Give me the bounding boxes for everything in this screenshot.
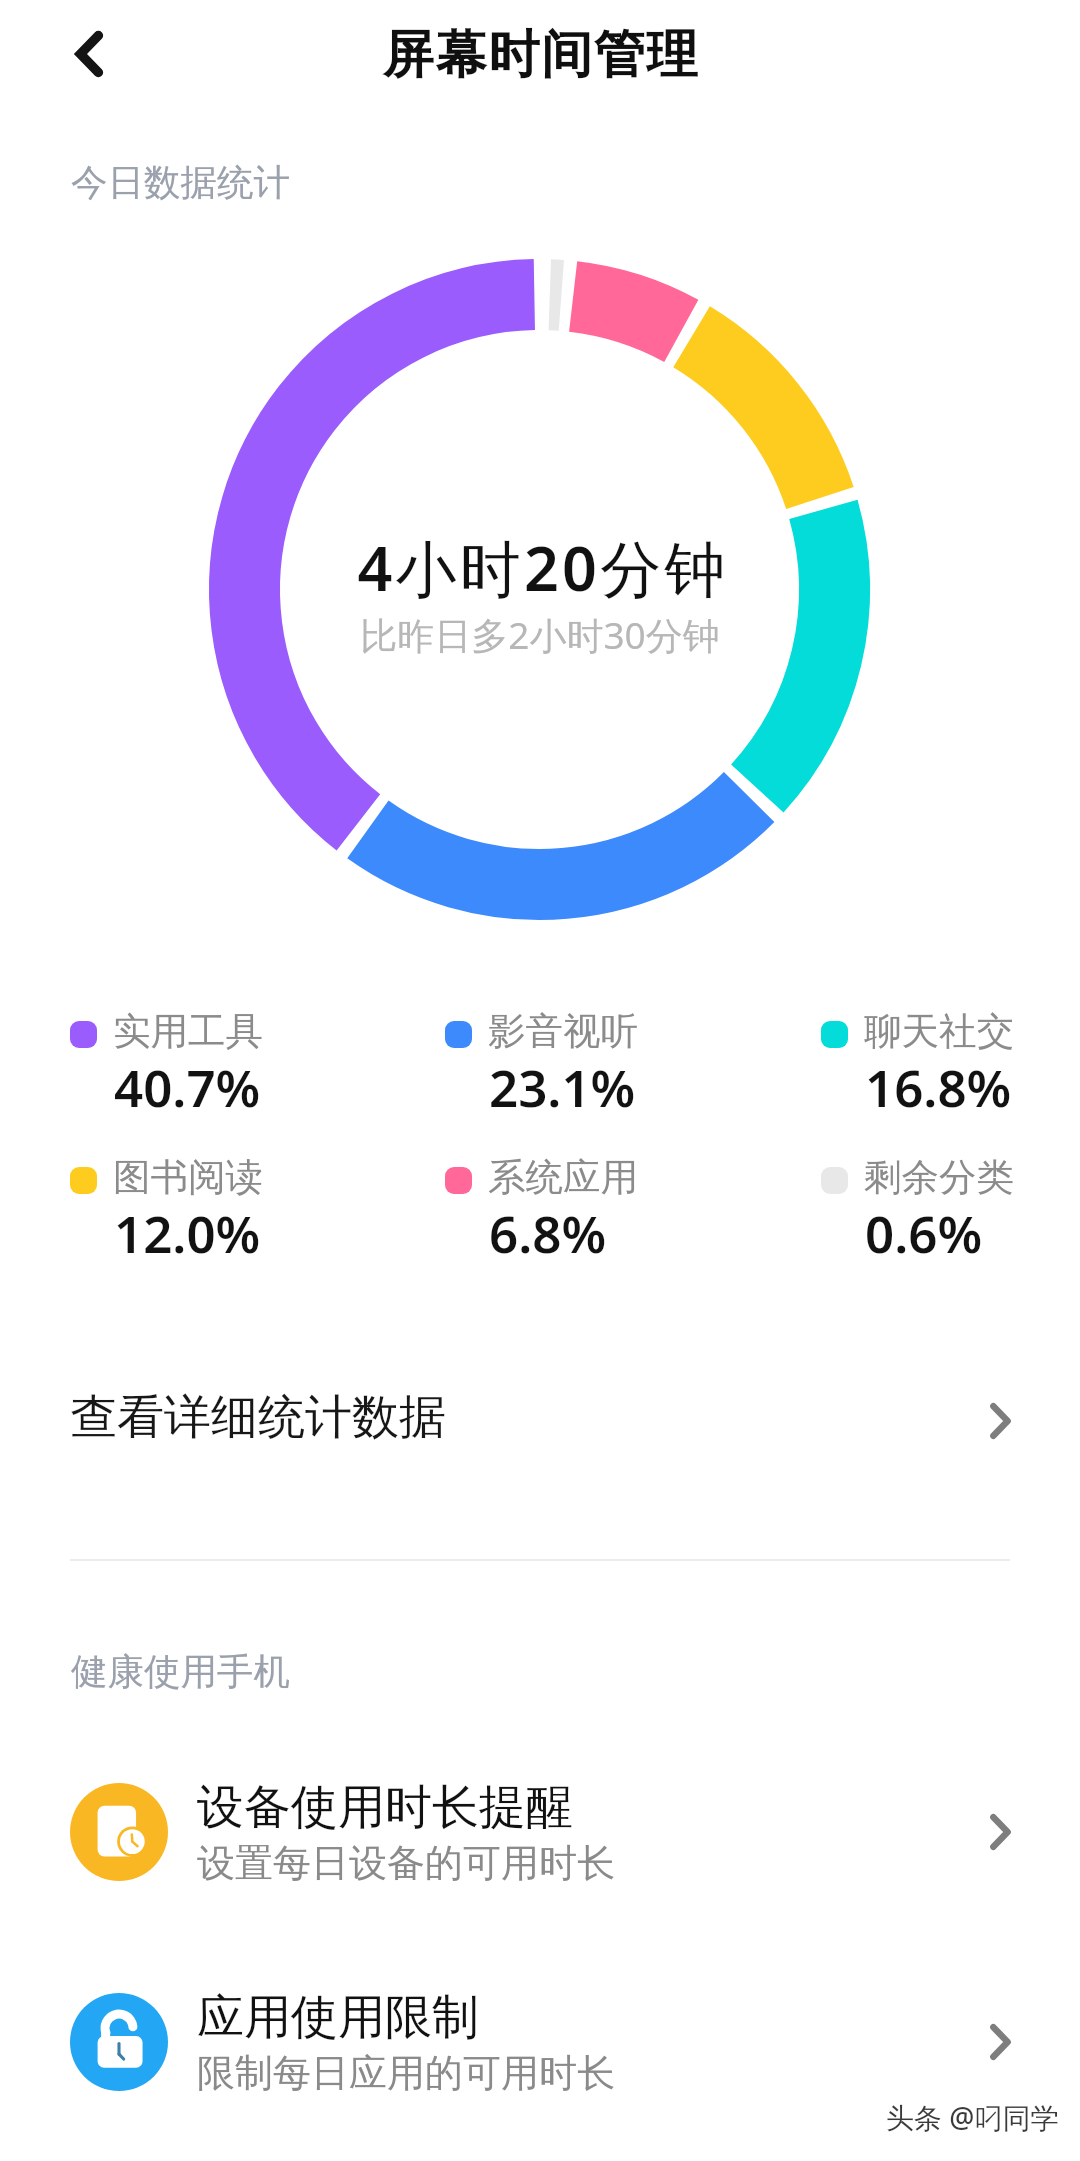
staticText: 头条 @叼同学 (886, 2098, 1059, 2136)
button[interactable]: 设备使用时长提醒 (0, 1752, 1080, 1912)
staticText: 应用使用限制 (197, 1988, 479, 2047)
staticText: 查看详细统计数据 (70, 1388, 446, 1447)
staticText: 系统应用 (488, 1154, 638, 1201)
staticText: 23.1% (489, 1052, 636, 1121)
staticText: 设置每日设备的可用时长 (197, 1839, 615, 1887)
staticText: 影音视听 (488, 1008, 638, 1055)
staticText: 限制每日应用的可用时长 (197, 2049, 615, 2097)
staticText: 聊天社交 (864, 1008, 1014, 1055)
staticText: 0.6% (865, 1198, 983, 1267)
staticText: 设备使用时长提醒 (197, 1778, 573, 1837)
staticText: 剩余分类 (864, 1154, 1014, 1201)
staticText: 16.8% (865, 1052, 1012, 1121)
staticText: 图书阅读 (113, 1154, 263, 1201)
staticText: 实用工具 (113, 1008, 263, 1055)
button[interactable]: Back (38, 4, 138, 104)
button[interactable]: 应用使用限制 (0, 1962, 1080, 2122)
staticText: 屏幕时间管理 (1, 23, 1080, 87)
staticText: 12.0% (114, 1198, 261, 1267)
button[interactable]: 查看详细统计数据 (0, 1342, 1080, 1492)
staticText: 比昨日多2小时30分钟 (0, 609, 1080, 660)
staticText: 今日数据统计 (71, 160, 290, 206)
staticText: 4小时20分钟 (3, 526, 1080, 609)
staticText: 健康使用手机 (71, 1649, 290, 1695)
staticText: 6.8% (489, 1198, 607, 1267)
staticText: 40.7% (114, 1052, 261, 1121)
